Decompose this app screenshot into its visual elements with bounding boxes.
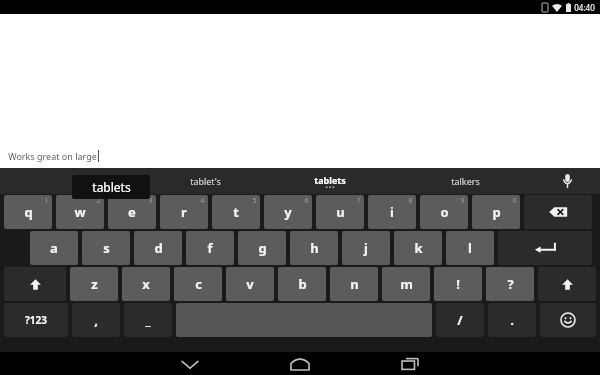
staticText: . [510, 311, 514, 329]
button[interactable]: Enter [498, 231, 592, 265]
button[interactable]: 9 [420, 195, 468, 229]
button[interactable]: 4 [160, 195, 208, 229]
button[interactable]: l [446, 231, 494, 265]
button[interactable]: Home [265, 353, 335, 375]
staticText: a [50, 239, 58, 257]
button[interactable]: f [186, 231, 234, 265]
button[interactable]: b [278, 267, 326, 301]
staticText: 4 [200, 196, 205, 206]
button[interactable]: a [30, 231, 78, 265]
button[interactable]: ?123 [4, 303, 68, 337]
button[interactable]: n [330, 267, 378, 301]
staticText: p [492, 203, 501, 221]
button[interactable]: j [342, 231, 390, 265]
button[interactable]: talkers [395, 168, 535, 194]
staticText: l [468, 239, 472, 257]
staticText: o [440, 203, 449, 221]
button[interactable]: s [82, 231, 130, 265]
button[interactable]: ? [486, 267, 534, 301]
staticText: r [181, 203, 187, 221]
button[interactable]: 7 [316, 195, 364, 229]
button[interactable]: 6 [264, 195, 312, 229]
other: Backspace [548, 206, 568, 218]
button[interactable]: , [72, 303, 120, 337]
staticText: b [298, 275, 307, 293]
staticText: w [74, 203, 86, 221]
staticText: 8 [408, 196, 413, 206]
staticText: g [258, 239, 267, 257]
staticText: f [207, 239, 213, 257]
button[interactable]: d [134, 231, 182, 265]
staticText: 7 [356, 196, 361, 206]
staticText: v [246, 275, 254, 293]
button[interactable]: Backspace [524, 195, 592, 229]
staticText: 5 [252, 196, 257, 206]
staticText: 04:40 [574, 2, 595, 13]
button[interactable]: h [290, 231, 338, 265]
staticText: q [24, 203, 33, 221]
button[interactable]: 8 [368, 195, 416, 229]
staticText: tablets [92, 179, 131, 195]
staticText: x [142, 275, 150, 293]
button[interactable]: Shift [538, 267, 596, 301]
staticText: h [310, 239, 319, 257]
staticText: , [94, 311, 98, 329]
staticText: u [336, 203, 345, 221]
staticText: c [195, 275, 202, 293]
button[interactable]: 3 [108, 195, 156, 229]
other: Emoji [560, 312, 576, 328]
button[interactable]: x [122, 267, 170, 301]
staticText: t [233, 203, 239, 221]
button[interactable]: Hide keyboard [155, 353, 225, 375]
button[interactable]: tablets [265, 168, 395, 194]
staticText: k [414, 239, 423, 257]
button[interactable]: c [174, 267, 222, 301]
button[interactable]: v [226, 267, 274, 301]
staticText: d [154, 239, 163, 257]
other: Shift [29, 278, 42, 291]
staticText: y [284, 203, 292, 221]
staticText: 1 [44, 196, 49, 206]
button[interactable]: 1 [4, 195, 52, 229]
staticText: m [400, 275, 413, 293]
button[interactable]: 0 [472, 195, 520, 229]
button[interactable] [0, 168, 145, 194]
button[interactable]: _ [124, 303, 172, 337]
staticText: / [457, 311, 463, 329]
staticText: ?123 [25, 313, 47, 327]
staticText: 9 [460, 196, 465, 206]
button[interactable]: . [488, 303, 536, 337]
staticText: 3 [148, 196, 153, 206]
staticText: talkers [451, 175, 480, 187]
staticText: n [350, 275, 359, 293]
button[interactable]: / [436, 303, 484, 337]
staticText: z [91, 275, 98, 293]
button[interactable]: m [382, 267, 430, 301]
button[interactable]: Shift [4, 267, 66, 301]
staticText: tablets [314, 174, 346, 186]
staticText: 2 [96, 196, 101, 206]
button[interactable]: 5 [212, 195, 260, 229]
button[interactable]: k [394, 231, 442, 265]
button[interactable]: tablets [72, 175, 150, 199]
staticText: ! [456, 275, 460, 293]
staticText: 6 [304, 196, 309, 206]
staticText: ? [507, 275, 514, 293]
staticText: e [128, 203, 136, 221]
staticText: tablet's [190, 175, 221, 187]
staticText: Works great on large [8, 150, 97, 162]
button[interactable]: Voice input [535, 168, 600, 194]
button[interactable]: ! [434, 267, 482, 301]
staticText: s [103, 239, 110, 257]
button[interactable]: Recent apps [375, 353, 445, 375]
button[interactable]: tablet's [145, 168, 265, 194]
staticText: _ [145, 311, 151, 329]
button[interactable]: tablet's [0, 168, 600, 194]
other: Shift [561, 278, 574, 291]
button[interactable]: g [238, 231, 286, 265]
button[interactable]: Emoji [540, 303, 596, 337]
button[interactable]: z [70, 267, 118, 301]
staticText: j [364, 239, 368, 257]
button[interactable]: 2 [56, 195, 104, 229]
